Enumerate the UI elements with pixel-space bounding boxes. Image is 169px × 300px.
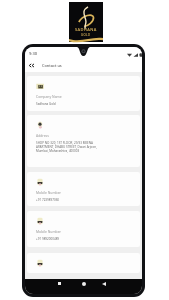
staticText: Company Name	[36, 94, 62, 99]
button[interactable]: Mobile Number	[27, 172, 140, 206]
staticText: Address	[36, 133, 49, 138]
button[interactable]	[27, 253, 140, 273]
staticText: Sadhana Gold	[36, 102, 56, 106]
button[interactable]: Back	[26, 60, 37, 71]
staticText: 9:30	[29, 51, 38, 57]
staticText: SHOP NO 320, 1ST FLOOR, 29/33 MEENA	[36, 141, 93, 145]
staticText: GOLD	[81, 33, 91, 37]
button[interactable]: Recent apps	[55, 279, 64, 288]
staticText: +91 9892000489	[36, 237, 60, 241]
button[interactable]: Home	[79, 279, 88, 288]
staticText: +91 7239897060	[36, 198, 60, 202]
staticText: APARTMENT, DHABU STREET, Dwari Arjoon,	[36, 145, 97, 149]
button[interactable]: Address	[27, 115, 140, 167]
button[interactable]: Mobile Number	[27, 211, 140, 247]
staticText: Contact us	[42, 63, 62, 68]
staticText: Mobile Number	[36, 190, 61, 195]
staticText: Mumbai, Maharashtra, 400003	[36, 149, 80, 153]
button[interactable]: Company Name	[27, 76, 140, 111]
staticText: Mobile Number	[36, 229, 61, 234]
button[interactable]: Back	[99, 279, 108, 288]
staticText: SADHANA	[75, 27, 97, 32]
